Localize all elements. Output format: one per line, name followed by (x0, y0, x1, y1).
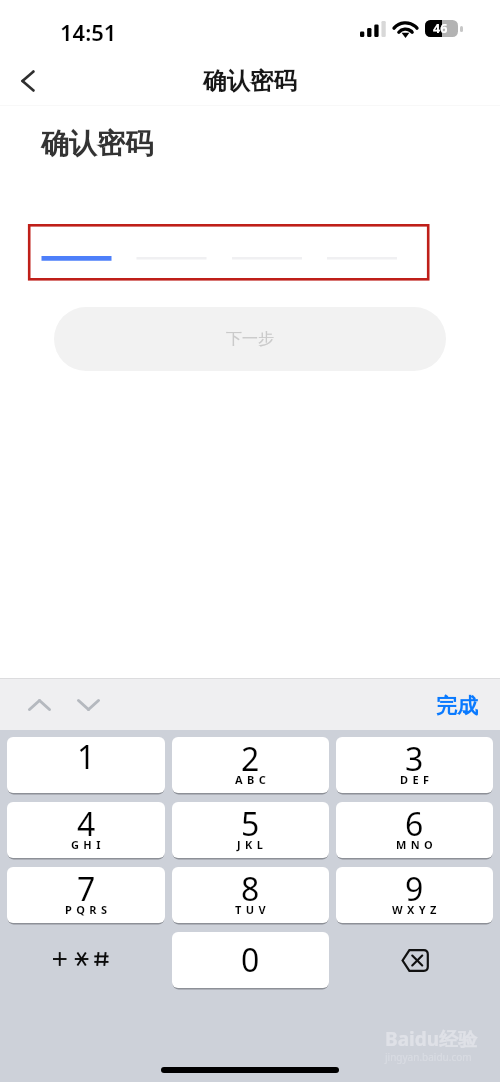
button[interactable]: 5 (172, 802, 329, 858)
staticText: 0 (241, 938, 260, 982)
button[interactable]: 完成 (414, 683, 500, 725)
staticText: Baidu经验 (385, 1026, 478, 1052)
button[interactable]: Next field (63, 678, 113, 730)
staticText: PQRS (65, 902, 112, 917)
staticText: 8 (241, 867, 260, 911)
staticText: DEF (400, 772, 434, 787)
staticText: 7 (77, 867, 96, 911)
staticText: JKL (237, 837, 268, 852)
staticText: 2 (241, 737, 260, 781)
button[interactable]: 6 (336, 802, 493, 858)
staticText: MNO (396, 837, 438, 852)
staticText: GHI (71, 837, 105, 852)
staticText: 下一步 (226, 329, 274, 349)
staticText: 5 (241, 802, 260, 846)
button[interactable]: Back (0, 56, 54, 106)
staticText: 4 (77, 802, 96, 846)
button[interactable]: 7 (7, 867, 165, 923)
button[interactable]: 9 (336, 867, 493, 923)
staticText: ABC (235, 772, 271, 787)
staticText: 完成 (436, 693, 478, 719)
staticText: 确认密码 (203, 66, 297, 96)
staticText: WXYZ (392, 902, 441, 917)
staticText: TUV (235, 902, 271, 917)
staticText: 46 (433, 20, 448, 37)
button[interactable]: 1 (7, 737, 165, 793)
staticText: 3 (405, 737, 424, 781)
button[interactable]: 0 (172, 932, 329, 988)
staticText: 6 (405, 802, 424, 846)
button[interactable]: Delete (336, 932, 493, 988)
button[interactable]: plus star hash (7, 932, 165, 988)
button[interactable]: 4 (7, 802, 165, 858)
staticText: jingyan.baidu.com (385, 1050, 472, 1064)
staticText: 9 (405, 867, 424, 911)
button[interactable]: Previous field (14, 678, 64, 730)
button[interactable]: 2 (172, 737, 329, 793)
button[interactable]: 3 (336, 737, 493, 793)
staticText: 1 (77, 737, 96, 779)
button[interactable]: 下一步 (54, 307, 446, 371)
staticText: 确认密码 (41, 126, 153, 161)
button[interactable]: 8 (172, 867, 329, 923)
staticText: 14:51 (60, 17, 117, 47)
